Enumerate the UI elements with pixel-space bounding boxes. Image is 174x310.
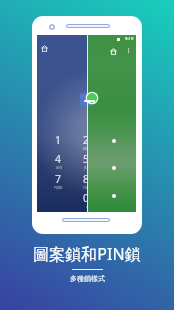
staticText: 9:19 <box>125 36 134 42</box>
button[interactable]: Home <box>110 48 117 55</box>
staticText: JKL <box>84 166 89 170</box>
button[interactable]: 0 <box>77 191 95 210</box>
button[interactable]: More options <box>126 48 131 53</box>
button[interactable]: 1 <box>49 133 67 152</box>
button[interactable]: 2 <box>77 133 95 152</box>
staticText: ABC <box>83 147 90 151</box>
staticText: + <box>86 205 88 209</box>
button[interactable]: Home <box>41 45 48 52</box>
button[interactable]: 4 <box>49 152 67 171</box>
staticText: GHI <box>56 166 62 170</box>
staticText: 1 <box>55 133 62 147</box>
staticText: 7 <box>55 172 62 186</box>
staticText: 圖案鎖和PIN鎖 <box>33 243 141 265</box>
staticText: 5 <box>83 152 90 166</box>
staticText: PQRS <box>54 186 63 190</box>
staticText: 2 <box>83 133 90 147</box>
button[interactable]: 7 <box>49 172 67 191</box>
staticText: 4 <box>55 152 62 166</box>
button[interactable]: 8 <box>77 172 95 191</box>
staticText: TUV <box>83 186 90 190</box>
staticText: 8 <box>83 172 90 186</box>
staticText: 多種鎖樣式 <box>70 274 105 283</box>
staticText: 0 <box>83 191 90 205</box>
button[interactable]: 5 <box>77 152 95 171</box>
